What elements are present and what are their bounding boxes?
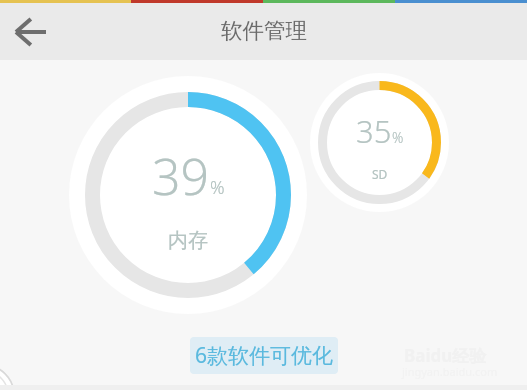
button[interactable]: 35 — [310, 73, 449, 212]
staticText: SD — [372, 166, 388, 182]
staticText: 35 — [356, 110, 392, 152]
staticText: 6款软件可优化 — [195, 341, 334, 370]
staticText: 软件管理 — [221, 17, 307, 44]
staticText: % — [392, 128, 404, 147]
staticText: 39 — [152, 142, 210, 210]
button[interactable]: Back — [5, 6, 57, 58]
staticText: 内存 — [168, 228, 208, 253]
button[interactable]: 39 — [69, 76, 307, 314]
staticText: % — [210, 175, 225, 200]
button[interactable]: 6款软件可优化 — [190, 337, 338, 374]
